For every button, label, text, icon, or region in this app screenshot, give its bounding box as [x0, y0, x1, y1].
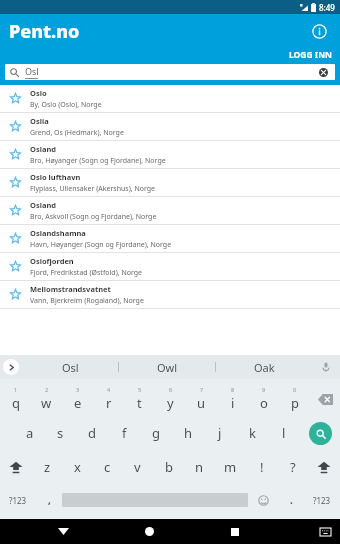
button[interactable]: 1	[0, 382, 31, 416]
button[interactable]: Recents	[221, 519, 249, 544]
button[interactable]: Osland	[0, 141, 340, 168]
button[interactable]: ?123	[0, 484, 36, 516]
staticText: Oak	[254, 360, 275, 375]
button[interactable]: Osl	[22, 355, 118, 379]
staticText: i	[231, 394, 235, 412]
button[interactable]: Emoji	[248, 484, 278, 516]
button[interactable]: n	[184, 450, 215, 484]
button[interactable]: 7	[186, 382, 217, 416]
button[interactable]: 6	[155, 382, 186, 416]
button[interactable]: Oslo lufthavn	[0, 169, 340, 196]
staticText: ,	[48, 493, 51, 507]
button[interactable]: .	[278, 484, 304, 516]
staticText: b	[165, 458, 173, 476]
button[interactable]: k	[236, 416, 268, 450]
staticText: Bro, Høyanger (Sogn og Fjordane), Norge	[30, 156, 166, 166]
staticText: p	[291, 394, 299, 412]
button[interactable]: Home	[135, 519, 163, 544]
button[interactable]: g	[140, 416, 172, 450]
button[interactable]: Osl	[5, 64, 335, 80]
staticText: Mellomstrandsvatnet	[30, 284, 111, 294]
staticText: 0	[293, 386, 297, 393]
button[interactable]: LOGG INN	[289, 48, 332, 62]
button[interactable]: 2	[31, 382, 62, 416]
staticText: l	[282, 424, 286, 442]
staticText: z	[44, 458, 51, 476]
button[interactable]: 8	[217, 382, 248, 416]
button[interactable]: Info	[306, 18, 332, 44]
staticText: Fjord, Fredrikstad (Østfold), Norge	[30, 268, 143, 278]
staticText: Pent.no	[9, 19, 80, 44]
staticText: 7	[200, 386, 204, 393]
button[interactable]: Keyboard active	[313, 520, 337, 544]
staticText: q	[12, 394, 20, 412]
button[interactable]: c	[92, 450, 122, 484]
button[interactable]: l	[268, 416, 300, 450]
staticText: 1	[14, 386, 18, 393]
button[interactable]: Shift	[0, 450, 32, 484]
staticText: s	[57, 424, 64, 442]
button[interactable]: d	[76, 416, 108, 450]
button[interactable]: ?	[277, 450, 308, 484]
staticText: Flyplass, Ullensaker (Akershus), Norge	[30, 184, 156, 194]
staticText: Osl	[62, 360, 79, 375]
staticText: Grend, Os (Hedmark), Norge	[30, 128, 124, 138]
button[interactable]: Oslo	[0, 85, 340, 112]
staticText: c	[104, 458, 111, 476]
button[interactable]: Owl	[119, 355, 215, 379]
staticText: k	[249, 424, 256, 442]
button[interactable]: h	[172, 416, 204, 450]
button[interactable]: x	[62, 450, 92, 484]
button[interactable]: v	[122, 450, 153, 484]
button[interactable]: ,	[36, 484, 62, 516]
staticText: Osland	[30, 144, 57, 154]
button[interactable]: Shift	[308, 450, 340, 484]
button[interactable]: s	[45, 416, 76, 450]
staticText: w	[41, 394, 52, 412]
button[interactable]: Voice input	[312, 355, 340, 379]
button[interactable]: Oslofjorden	[0, 253, 340, 280]
staticText: Oslo lufthavn	[30, 172, 81, 182]
button[interactable]: 0	[279, 382, 310, 416]
button[interactable]: z	[32, 450, 62, 484]
staticText: Oslofjorden	[30, 256, 74, 266]
staticText: u	[197, 394, 206, 412]
staticText: 3	[76, 386, 80, 393]
button[interactable]: Clear search	[317, 66, 330, 79]
button[interactable]: 5	[124, 382, 155, 416]
staticText: a	[26, 424, 34, 442]
button[interactable]: ?123	[304, 484, 340, 516]
staticText: Owl	[157, 360, 178, 375]
staticText: t	[137, 394, 142, 412]
button[interactable]: m	[215, 450, 246, 484]
staticText: f	[122, 424, 127, 442]
button[interactable]: Expand suggestions	[0, 355, 22, 379]
button[interactable]: Search	[300, 416, 340, 450]
staticText: Osland	[30, 200, 57, 210]
staticText: .	[290, 493, 293, 507]
button[interactable]: Oslandshamna	[0, 225, 340, 252]
button[interactable]: 3	[62, 382, 93, 416]
staticText: 8	[231, 386, 235, 393]
staticText: Havn, Høyanger (Sogn og Fjordane), Norge	[30, 240, 172, 250]
button[interactable]: b	[153, 450, 184, 484]
staticText: y	[167, 394, 174, 412]
button[interactable]: Backspace	[310, 382, 340, 416]
staticText: ?123	[313, 495, 331, 506]
button[interactable]: Osland	[0, 197, 340, 224]
staticText: By, Oslo (Oslo), Norge	[30, 100, 102, 110]
button[interactable]: 4	[93, 382, 124, 416]
button[interactable]: Back	[49, 519, 77, 544]
button[interactable]: !	[246, 450, 277, 484]
staticText: Oslandshamna	[30, 228, 86, 238]
button[interactable]: Mellomstrandsvatnet	[0, 281, 340, 308]
button[interactable]: 9	[248, 382, 279, 416]
button[interactable]: a	[14, 416, 45, 450]
staticText: g	[152, 424, 160, 442]
button[interactable]: Oak	[216, 355, 312, 379]
staticText: ?	[290, 458, 296, 476]
button[interactable]: f	[108, 416, 140, 450]
button[interactable]: j	[204, 416, 236, 450]
button[interactable]: Oslia	[0, 113, 340, 140]
